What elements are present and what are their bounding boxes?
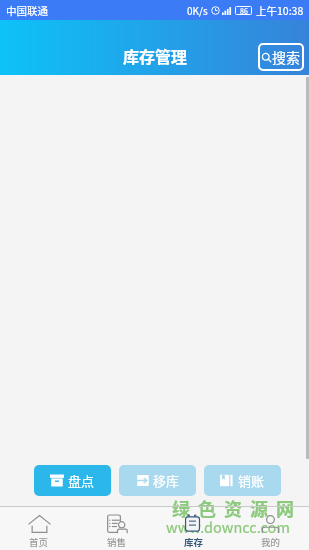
- button[interactable]: 销售: [78, 507, 155, 550]
- staticText: 绿色资源网: [172, 495, 302, 521]
- staticText: 86: [240, 6, 248, 15]
- button[interactable]: 移库: [119, 465, 196, 496]
- staticText: 上午10:38: [256, 3, 304, 18]
- button[interactable]: 盘点: [34, 465, 111, 496]
- staticText: 销售: [107, 535, 127, 549]
- staticText: 0K/s: [187, 3, 208, 17]
- button[interactable]: 首页: [0, 507, 78, 550]
- staticText: 中国联通: [6, 3, 48, 18]
- staticText: 移库: [153, 471, 180, 490]
- button[interactable]: 我的: [232, 507, 309, 550]
- staticText: 搜索: [272, 47, 300, 67]
- staticText: www.downcc.com: [166, 516, 290, 537]
- staticText: 库存: [184, 535, 204, 549]
- button[interactable]: 搜索: [258, 43, 304, 71]
- staticText: 我的: [261, 535, 281, 549]
- staticText: 销账: [238, 471, 265, 490]
- staticText: 库存管理: [123, 44, 188, 67]
- button[interactable]: 库存: [155, 507, 232, 550]
- staticText: 首页: [29, 535, 49, 549]
- staticText: 盘点: [68, 471, 95, 490]
- button[interactable]: 销账: [204, 465, 281, 496]
